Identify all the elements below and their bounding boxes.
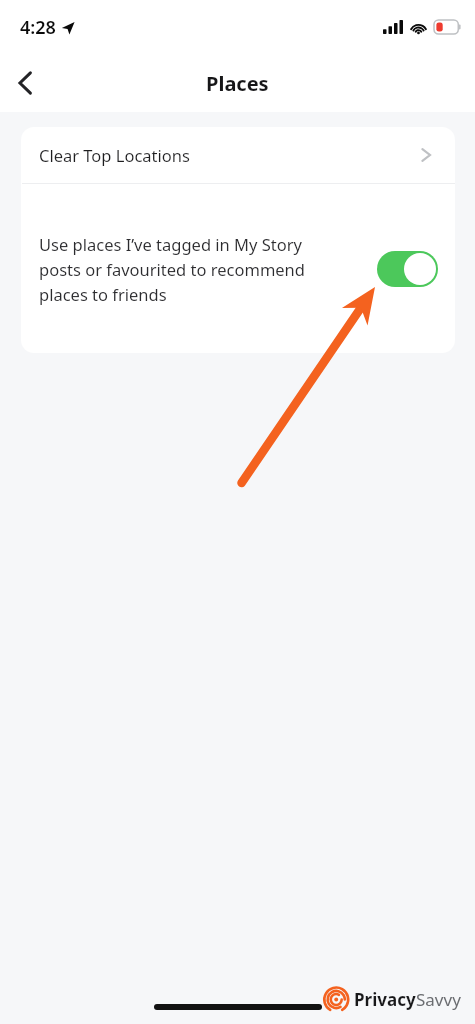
- staticText: Privacy: [354, 988, 416, 1011]
- staticText: Places: [206, 70, 269, 97]
- staticText: 4:28: [20, 15, 56, 40]
- staticText: Savvy: [416, 988, 461, 1011]
- button[interactable]: Back: [6, 64, 44, 102]
- button[interactable]: Recommend places toggle, on: [377, 251, 438, 287]
- button[interactable]: Clear Top Locations: [21, 127, 455, 183]
- button[interactable]: Use places I’ve tagged in My Story posts…: [21, 184, 455, 353]
- staticText: Use places I’ve tagged in My Story posts…: [39, 233, 331, 305]
- staticText: Clear Top Locations: [39, 144, 190, 166]
